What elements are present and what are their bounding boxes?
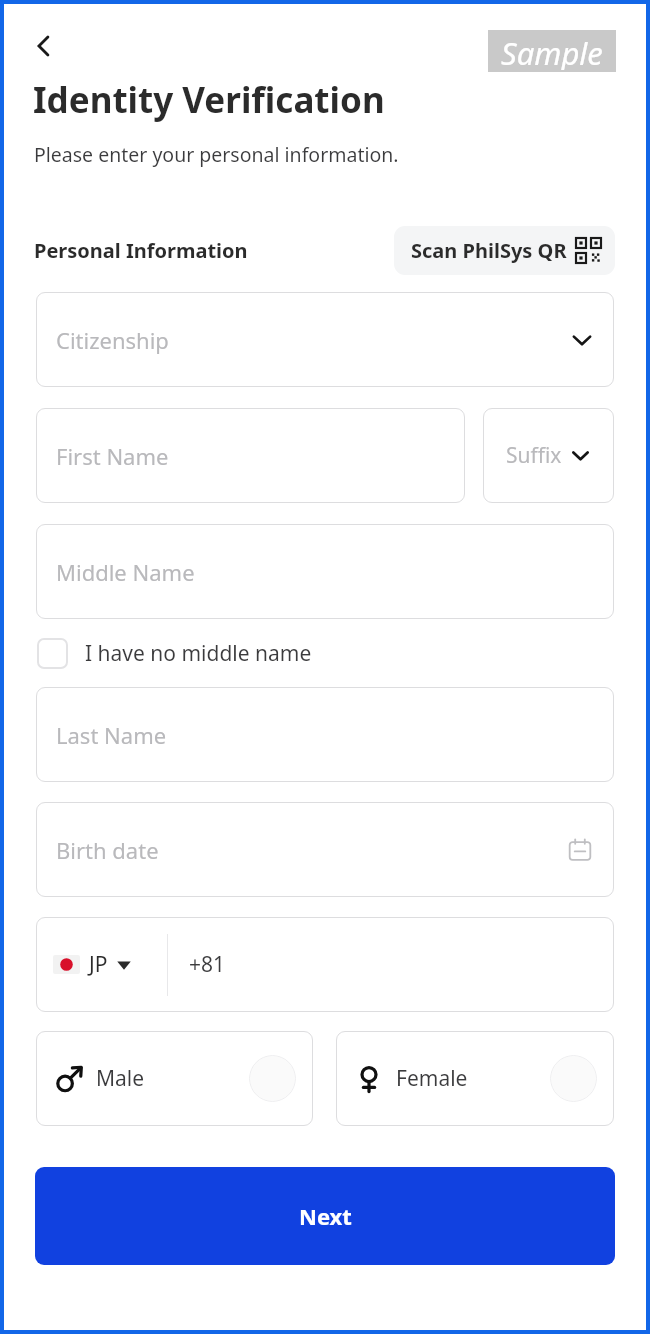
staticText: JP bbox=[89, 950, 108, 979]
button[interactable]: Back bbox=[22, 24, 66, 68]
staticText: I have no middle name bbox=[85, 639, 312, 668]
button[interactable]: Middle Name bbox=[36, 524, 614, 619]
staticText: Suffix bbox=[506, 441, 562, 470]
staticText: Female bbox=[396, 1064, 468, 1093]
button[interactable]: Last Name bbox=[36, 687, 614, 782]
staticText: Scan PhilSys QR bbox=[411, 237, 567, 264]
button[interactable]: Male bbox=[36, 1031, 313, 1126]
staticText: Middle Name bbox=[56, 557, 195, 587]
button[interactable]: I have no middle name bbox=[35, 633, 314, 674]
staticText: Sample bbox=[501, 32, 603, 70]
staticText: Last Name bbox=[56, 720, 167, 750]
button[interactable]: Birth date bbox=[36, 802, 614, 897]
button[interactable]: JP bbox=[36, 917, 167, 1012]
staticText: Please enter your personal information. bbox=[34, 141, 399, 168]
staticText: +81 bbox=[189, 950, 226, 979]
staticText: Male bbox=[96, 1064, 145, 1093]
staticText: Next bbox=[299, 1201, 352, 1231]
staticText: Citizenship bbox=[56, 325, 169, 355]
button[interactable]: Female bbox=[336, 1031, 614, 1126]
button[interactable]: Suffix bbox=[483, 408, 614, 503]
staticText: Personal Information bbox=[34, 237, 248, 264]
button[interactable]: Scan PhilSys QR bbox=[394, 226, 615, 275]
button[interactable]: First Name bbox=[36, 408, 465, 503]
staticText: Birth date bbox=[56, 835, 159, 865]
button[interactable]: Citizenship bbox=[36, 292, 614, 387]
staticText: Identity Verification bbox=[33, 76, 385, 124]
staticText: First Name bbox=[56, 441, 169, 471]
button[interactable]: Next bbox=[35, 1167, 615, 1265]
